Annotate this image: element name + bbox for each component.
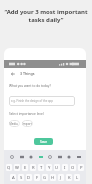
button[interactable]: A [10, 174, 16, 181]
button[interactable]: W [14, 164, 20, 171]
staticText: S [20, 175, 23, 181]
button[interactable]: Keyboard tool [9, 154, 14, 159]
staticText: Important [22, 122, 33, 126]
button[interactable]: O [70, 164, 76, 171]
button[interactable]: E [22, 164, 28, 171]
button[interactable]: L [74, 174, 80, 181]
button[interactable]: Medium [9, 120, 20, 127]
button[interactable]: Keyboard tool [66, 154, 71, 159]
button[interactable]: Save [34, 138, 53, 145]
staticText: T [40, 165, 43, 171]
staticText: 3 Things [20, 71, 35, 76]
button[interactable]: R [30, 164, 36, 171]
staticText: Q [7, 165, 11, 171]
button[interactable]: Keyboard tool [47, 154, 52, 159]
button[interactable]: U [54, 164, 60, 171]
staticText: “Add your 3 most important tasks daily” [4, 8, 88, 24]
staticText: P [80, 165, 83, 171]
button[interactable]: Back [9, 70, 16, 77]
button[interactable]: Q [6, 164, 12, 171]
button[interactable]: G [42, 174, 48, 181]
button[interactable]: Keyboard tool [28, 154, 33, 159]
staticText: H [51, 175, 55, 181]
button[interactable]: J [58, 174, 64, 181]
button[interactable]: Keyboard tool [38, 154, 43, 159]
button[interactable]: Important [22, 120, 33, 127]
button[interactable]: P [78, 164, 84, 171]
staticText: K [68, 175, 71, 181]
button[interactable]: Y [46, 164, 52, 171]
staticText: O [71, 165, 75, 171]
button[interactable]: S [18, 174, 24, 181]
staticText: A [12, 175, 15, 181]
staticText: G [43, 175, 47, 181]
staticText: E [24, 165, 27, 171]
button[interactable]: F [34, 174, 40, 181]
button[interactable]: I [62, 164, 68, 171]
staticText: R [32, 165, 35, 171]
staticText: Medium [9, 122, 20, 126]
staticText: What you want to do today? [9, 84, 51, 88]
button[interactable]: H [50, 174, 56, 181]
button[interactable]: D [26, 174, 32, 181]
staticText: Save [40, 140, 47, 144]
staticText: L [76, 175, 79, 181]
button[interactable]: Keyboard tool [19, 154, 24, 159]
staticText: I [64, 165, 66, 171]
staticText: D [27, 175, 31, 181]
staticText: Y [48, 165, 51, 171]
staticText: W [15, 165, 19, 171]
staticText: J [60, 175, 62, 181]
button[interactable]: T [38, 164, 44, 171]
button[interactable]: Keyboard tool [76, 154, 81, 159]
staticText: e.g. Finish the design of the app [11, 99, 53, 103]
staticText: F [36, 175, 39, 181]
button[interactable]: e.g. Finish the design of the app [9, 96, 75, 106]
staticText: Select importance level [9, 112, 44, 116]
button[interactable]: K [66, 174, 72, 181]
staticText: U [55, 165, 59, 171]
button[interactable]: Keyboard tool [57, 154, 62, 159]
